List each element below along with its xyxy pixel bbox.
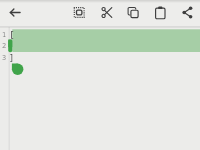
staticText: 3 bbox=[2, 53, 7, 63]
staticText: ] bbox=[9, 51, 15, 63]
staticText: [ bbox=[9, 28, 15, 40]
button[interactable]: Paste bbox=[149, 1, 171, 26]
staticText: 1 bbox=[2, 30, 7, 40]
button[interactable]: Cut bbox=[95, 1, 117, 26]
staticText: 2 bbox=[2, 41, 7, 51]
button[interactable]: Code editor bbox=[0, 27, 200, 150]
button[interactable]: Share bbox=[177, 1, 199, 26]
button[interactable]: Copy bbox=[122, 1, 144, 26]
button[interactable]: Select all bbox=[68, 1, 90, 26]
button[interactable]: Back bbox=[4, 1, 26, 26]
